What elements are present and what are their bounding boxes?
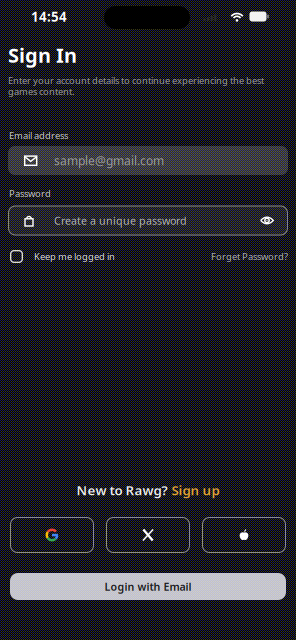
- staticText: Email address: [9, 129, 68, 142]
- staticText: New to Rawg?: [76, 481, 167, 499]
- button[interactable]: Sign in with X: [106, 517, 190, 553]
- staticText: Sign In: [8, 42, 77, 68]
- button[interactable]: Forget Password?: [211, 250, 288, 263]
- staticText: Enter your account details to continue e…: [8, 74, 264, 87]
- button[interactable]: Sign in with Google: [10, 517, 94, 553]
- staticText: Keep me logged in: [34, 250, 115, 263]
- staticText: Login with Email: [104, 579, 191, 594]
- button[interactable]: sample@gmail.com: [8, 146, 288, 175]
- button[interactable]: Sign up: [171, 481, 219, 499]
- button[interactable]: Sign in with Apple: [202, 517, 286, 553]
- staticText: Create a unique password: [54, 213, 187, 228]
- staticText: Sign up: [171, 481, 219, 499]
- staticText: Forget Password?: [211, 250, 288, 263]
- staticText: 14:54: [31, 8, 67, 25]
- button[interactable]: Login with Email: [10, 573, 286, 600]
- button[interactable]: Create a unique password: [8, 205, 288, 235]
- staticText: sample@gmail.com: [54, 152, 164, 168]
- staticText: games content.: [8, 85, 75, 98]
- button[interactable]: Keep me logged in: [10, 250, 115, 263]
- staticText: Password: [9, 187, 51, 200]
